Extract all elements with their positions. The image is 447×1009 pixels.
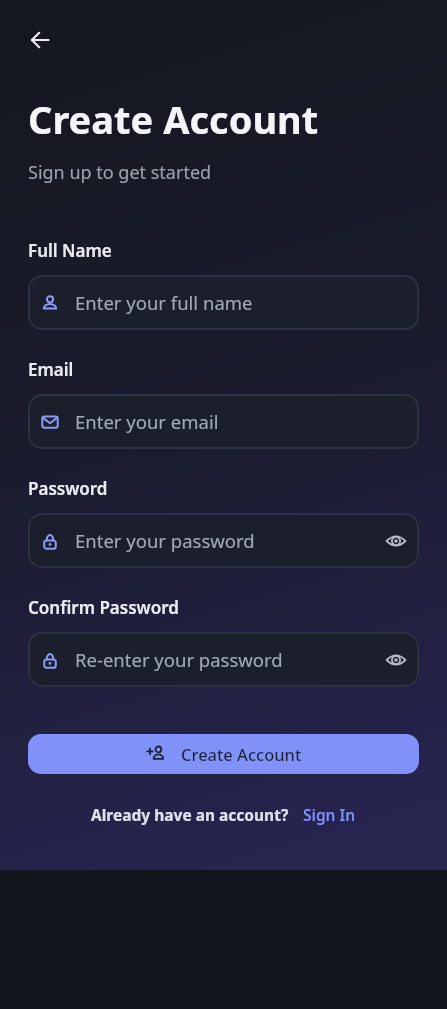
staticText: Re-enter your password <box>75 647 283 672</box>
staticText: Full Name <box>28 239 112 262</box>
staticText: Create Account <box>181 743 302 765</box>
staticText: Password <box>28 477 108 500</box>
button[interactable]: Enter your email <box>28 394 419 449</box>
button[interactable]: Enter your password <box>28 513 419 568</box>
staticText: Enter your email <box>75 409 219 434</box>
button[interactable]: Re-enter your password <box>28 632 419 687</box>
staticText: Already have an account? <box>91 804 289 825</box>
staticText: Create Account <box>28 93 319 145</box>
staticText: Enter your full name <box>75 290 253 315</box>
button[interactable]: Sign In <box>303 804 356 825</box>
staticText: Email <box>28 358 74 381</box>
staticText: Enter your password <box>75 528 255 553</box>
button[interactable]: Create Account <box>28 734 419 774</box>
staticText: Sign In <box>303 804 356 825</box>
staticText: Sign up to get started <box>28 160 212 185</box>
button[interactable] <box>385 649 407 671</box>
staticText: Confirm Password <box>28 596 179 619</box>
button[interactable] <box>385 530 407 552</box>
button[interactable]: Enter your full name <box>28 275 419 330</box>
button[interactable] <box>28 28 52 52</box>
